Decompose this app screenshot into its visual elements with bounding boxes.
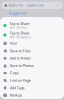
- staticText: Tap to Share: [10, 22, 30, 26]
- button[interactable]: Print: [0, 40, 64, 47]
- button[interactable]: Find on Page: [0, 77, 64, 84]
- button[interactable]: Tap to Share: [0, 21, 64, 30]
- staticText: Suggested: [9, 12, 26, 15]
- staticText: Copy: [10, 71, 19, 75]
- staticText: Tap to Share: [10, 31, 30, 35]
- staticText: with Messages: [10, 36, 31, 39]
- button[interactable]: Save to Files: [0, 47, 64, 55]
- button[interactable]: Markup: [0, 92, 64, 99]
- button[interactable]: Tap to Share: [0, 30, 64, 40]
- button[interactable]: Add to Notes: [0, 55, 64, 62]
- staticText: Markup: [10, 93, 22, 97]
- staticText: Print: [10, 41, 17, 46]
- button[interactable]: Save to Photos: [0, 62, 64, 69]
- staticText: with AirDrop: [10, 26, 28, 29]
- button[interactable]: Add Tags: [0, 84, 64, 92]
- staticText: Save to Files: [10, 49, 31, 53]
- staticText: Add to Notes: [10, 56, 31, 60]
- staticText: Save to Photos: [10, 64, 34, 68]
- staticText: Find on Page: [10, 78, 31, 83]
- button[interactable]: Close: [56, 4, 59, 7]
- staticText: Add Tags: [10, 86, 25, 90]
- staticText: Apple Inc. - apple.com: [8, 4, 44, 7]
- button[interactable]: Copy: [0, 69, 64, 77]
